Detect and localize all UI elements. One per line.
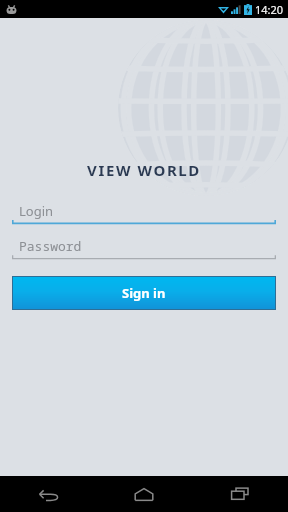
staticText: Sign in (122, 284, 166, 302)
button[interactable]: Sign in (13, 277, 275, 309)
button[interactable]: Password (12, 234, 276, 260)
staticText: VIEW WORLD (12, 160, 276, 180)
staticText: 14:20 (255, 2, 284, 17)
button[interactable]: Login (12, 199, 276, 225)
button[interactable]: Back (0, 476, 96, 512)
button[interactable]: Recent apps (192, 476, 288, 512)
staticText: Login (19, 202, 54, 220)
staticText: Password (19, 237, 82, 255)
button[interactable]: Home (96, 476, 192, 512)
